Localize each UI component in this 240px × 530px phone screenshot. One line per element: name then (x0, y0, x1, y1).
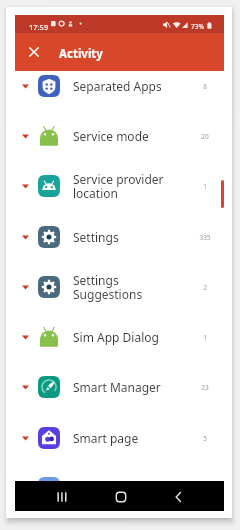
button[interactable]: Smart Switch (15, 463, 224, 481)
staticText: 2 (191, 283, 219, 292)
button[interactable]: Home (109, 485, 133, 509)
button[interactable]: Close (20, 38, 48, 66)
button[interactable]: Smart page (15, 413, 224, 463)
button[interactable]: Service mode (15, 111, 224, 161)
staticText: 73% (191, 22, 204, 31)
button[interactable]: Settings (15, 212, 224, 262)
button[interactable]: Back (167, 485, 191, 509)
button[interactable]: Sim App Dialog (15, 312, 224, 362)
staticText: Smart page (73, 430, 139, 446)
staticText: Service mode (73, 128, 149, 144)
staticText: 1 (191, 333, 219, 342)
staticText: Settings (73, 229, 119, 245)
staticText: Settings Suggestions (73, 272, 183, 303)
staticText: Sim App Dialog (73, 329, 159, 345)
button[interactable]: Settings Suggestions (15, 262, 224, 312)
staticText: 1 (191, 182, 219, 191)
staticText: Separated Apps (73, 78, 162, 94)
staticText: 8 (191, 82, 219, 91)
staticText: 17:59 (29, 22, 49, 32)
button[interactable]: Smart Manager (15, 362, 224, 412)
staticText: 335 (191, 233, 219, 242)
staticText: 23 (191, 383, 219, 392)
button[interactable]: Separated Apps (15, 71, 224, 111)
staticText: 20 (191, 132, 219, 141)
staticText: Smart Manager (73, 379, 161, 395)
staticText: Service provider location (73, 171, 183, 202)
button[interactable]: Service provider location (15, 161, 224, 211)
button[interactable]: Recents (50, 485, 74, 509)
staticText: Activity (59, 46, 103, 62)
staticText: 5 (191, 434, 219, 443)
